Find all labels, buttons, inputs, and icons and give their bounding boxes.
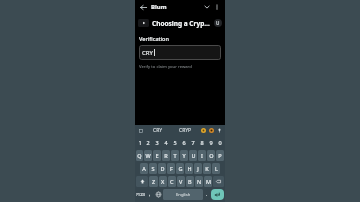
button[interactable]: F	[167, 163, 175, 174]
staticText: 9	[209, 139, 213, 146]
button[interactable]: Choosing a Crypto…	[135, 14, 225, 32]
button[interactable]: Q	[136, 150, 143, 161]
button[interactable]: S	[149, 163, 157, 174]
staticText: 0	[218, 139, 222, 146]
button[interactable]: E	[153, 150, 161, 161]
button[interactable]: U	[189, 150, 197, 161]
staticText: Verify to claim your reward	[139, 64, 192, 70]
button[interactable]: Y	[180, 150, 188, 161]
button[interactable]: X	[159, 176, 167, 187]
button[interactable]: 9	[207, 137, 215, 148]
staticText: English	[176, 192, 191, 198]
staticText: B	[188, 178, 192, 185]
staticText: ?123	[136, 192, 146, 198]
staticText: H	[187, 165, 192, 172]
staticText: C	[170, 178, 174, 185]
staticText: 6	[182, 139, 186, 146]
staticText: 8	[200, 139, 204, 146]
staticText: .	[206, 191, 208, 198]
button[interactable]: CRYP	[171, 125, 199, 135]
button[interactable]: 5	[171, 137, 179, 148]
staticText: V	[179, 178, 183, 185]
button[interactable]: 4	[162, 137, 170, 148]
staticText: Blum	[151, 3, 167, 11]
button[interactable]: Z	[149, 176, 158, 187]
button[interactable]: J	[194, 163, 202, 174]
button[interactable]: Channel avatar	[214, 19, 222, 27]
button[interactable]: Voice input	[215, 126, 223, 134]
staticText: Verification	[139, 35, 169, 42]
button[interactable]: D	[158, 163, 166, 174]
staticText: D	[160, 165, 165, 172]
button[interactable]: I	[198, 150, 206, 161]
button[interactable]: Clipboard	[137, 127, 144, 134]
staticText: ,	[149, 191, 151, 198]
staticText: S	[151, 165, 155, 172]
staticText: U	[191, 152, 196, 159]
button[interactable]: Expand	[202, 2, 212, 12]
button[interactable]: V	[177, 176, 185, 187]
button[interactable]: K	[203, 163, 211, 174]
button[interactable]: P	[216, 150, 224, 161]
staticText: P	[218, 152, 222, 159]
staticText: 5	[173, 139, 177, 146]
button[interactable]: English	[163, 189, 203, 200]
staticText: R	[164, 152, 168, 159]
button[interactable]: Emoji	[199, 126, 207, 134]
button[interactable]: CRY	[144, 125, 171, 135]
button[interactable]: .	[204, 189, 210, 200]
staticText: 2	[146, 139, 150, 146]
button[interactable]: Enter	[211, 189, 224, 200]
staticText: CRY	[142, 49, 153, 57]
button[interactable]: More options	[212, 2, 222, 12]
staticText: F	[170, 165, 173, 172]
button[interactable]: Change language	[154, 189, 162, 200]
button[interactable]: L	[212, 163, 220, 174]
staticText: Z	[152, 178, 156, 185]
button[interactable]: A	[140, 163, 148, 174]
staticText: G	[178, 165, 183, 172]
button[interactable]: 1	[136, 137, 143, 148]
button[interactable]: Back	[138, 2, 149, 13]
staticText: Q	[137, 152, 142, 159]
button[interactable]: G	[176, 163, 184, 174]
staticText: L	[215, 165, 218, 172]
staticText: CRY	[153, 127, 163, 134]
button[interactable]: 0	[216, 137, 224, 148]
staticText: X	[161, 178, 165, 185]
button[interactable]: H	[185, 163, 193, 174]
button[interactable]: 3	[153, 137, 161, 148]
button[interactable]: ,	[147, 189, 153, 200]
button[interactable]: N	[195, 176, 203, 187]
staticText: J	[197, 165, 199, 172]
staticText: 7	[191, 139, 195, 146]
button[interactable]: M	[204, 176, 212, 187]
button[interactable]: B	[186, 176, 194, 187]
staticText: E	[155, 152, 159, 159]
button[interactable]: W	[144, 150, 152, 161]
staticText: CRYP	[179, 127, 192, 134]
button[interactable]: 7	[189, 137, 197, 148]
button[interactable]: O	[207, 150, 215, 161]
button[interactable]: 6	[180, 137, 188, 148]
button[interactable]: 8	[198, 137, 206, 148]
staticText: 4	[164, 139, 168, 146]
staticText: T	[173, 152, 177, 159]
staticText: W	[145, 152, 151, 159]
button[interactable]: ?123	[136, 189, 146, 200]
button[interactable]: CRY	[139, 45, 221, 60]
staticText: 3	[155, 139, 159, 146]
staticText: N	[197, 178, 202, 185]
button[interactable]: Shift	[136, 176, 148, 187]
staticText: 1	[138, 139, 142, 146]
staticText: K	[205, 165, 209, 172]
staticText: U	[216, 20, 220, 26]
button[interactable]: C	[168, 176, 176, 187]
button[interactable]: GIF	[207, 126, 215, 134]
button[interactable]: 2	[144, 137, 152, 148]
button[interactable]: R	[162, 150, 170, 161]
button[interactable]: Backspace	[213, 176, 224, 187]
staticText: O	[209, 152, 214, 159]
button[interactable]: T	[171, 150, 179, 161]
staticText: Choosing a Crypto…	[152, 19, 212, 28]
